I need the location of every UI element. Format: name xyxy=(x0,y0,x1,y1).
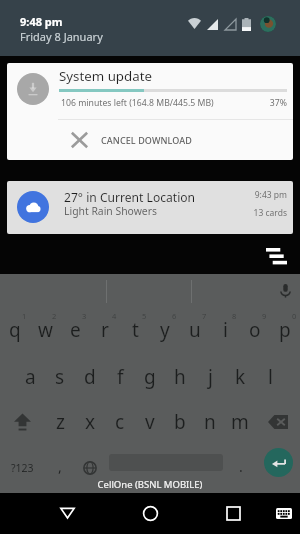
staticText: e xyxy=(70,317,81,343)
staticText: h xyxy=(174,364,186,390)
staticText: i xyxy=(223,317,228,343)
button[interactable]: j xyxy=(195,354,225,400)
staticText: ?123 xyxy=(11,461,34,475)
button[interactable]: CANCEL DOWNLOAD xyxy=(7,120,293,160)
staticText: q xyxy=(9,317,21,343)
button[interactable]: a xyxy=(15,354,45,400)
staticText: 8 xyxy=(232,311,237,321)
staticText: x xyxy=(85,409,96,435)
button[interactable]: r xyxy=(90,308,120,354)
staticText: j xyxy=(208,364,213,390)
button[interactable]: y xyxy=(150,308,180,354)
button[interactable]: e xyxy=(60,308,90,354)
staticText: 0 xyxy=(292,311,297,321)
button[interactable]: c xyxy=(105,399,135,445)
staticText: 106 minutes left (164.8 MB/445.5 MB) xyxy=(61,97,214,109)
staticText: 9 xyxy=(262,311,267,321)
staticText: g xyxy=(144,364,156,390)
button[interactable]: b xyxy=(165,399,195,445)
staticText: 2 xyxy=(52,311,57,321)
staticText: 5 xyxy=(142,311,147,321)
button[interactable]: v xyxy=(135,399,165,445)
staticText: 4 xyxy=(112,311,117,321)
button[interactable]: w xyxy=(30,308,60,354)
staticText: 27° in Current Location xyxy=(64,189,196,205)
button[interactable]: l xyxy=(255,354,285,400)
button[interactable]: Back xyxy=(53,499,81,527)
button[interactable]: ?123 xyxy=(0,445,45,491)
staticText: 7 xyxy=(202,311,207,321)
staticText: v xyxy=(145,409,155,435)
staticText: c xyxy=(115,409,125,435)
staticText: y xyxy=(160,317,170,343)
button[interactable]: i xyxy=(210,308,240,354)
staticText: 37% xyxy=(207,97,287,109)
staticText: 9:43 pm xyxy=(203,189,287,201)
staticText: b xyxy=(174,409,186,435)
button[interactable]: h xyxy=(165,354,195,400)
staticText: s xyxy=(55,364,65,390)
button[interactable]: Home xyxy=(136,499,164,527)
staticText: d xyxy=(84,364,96,390)
staticText: 9:48 pm xyxy=(20,14,63,29)
button[interactable]: p xyxy=(270,308,300,354)
staticText: r xyxy=(101,317,109,343)
button[interactable]: z xyxy=(45,399,75,445)
staticText: CANCEL DOWNLOAD xyxy=(101,134,192,146)
button[interactable]: Enter xyxy=(264,448,293,477)
button[interactable]: s xyxy=(45,354,75,400)
button[interactable]: System update xyxy=(7,63,293,160)
staticText: 1 xyxy=(22,311,27,321)
staticText: , xyxy=(58,457,62,476)
button[interactable]: Switch keyboard xyxy=(272,501,296,525)
staticText: CellOne (BSNL MOBILE) xyxy=(0,478,300,491)
button[interactable]: d xyxy=(75,354,105,400)
button[interactable]: Profile xyxy=(260,16,276,32)
staticText: o xyxy=(249,317,261,343)
staticText: w xyxy=(38,317,53,343)
staticText: 13 cards xyxy=(203,207,287,219)
staticText: l xyxy=(268,364,273,390)
button[interactable]: m xyxy=(225,399,255,445)
staticText: Light Rain Showers xyxy=(64,204,157,218)
button[interactable]: n xyxy=(195,399,225,445)
staticText: m xyxy=(231,409,249,435)
button[interactable]: f xyxy=(105,354,135,400)
button[interactable]: k xyxy=(225,354,255,400)
staticText: z xyxy=(56,409,65,435)
button[interactable]: u xyxy=(180,308,210,354)
button[interactable]: o xyxy=(240,308,270,354)
staticText: t xyxy=(132,317,139,343)
button[interactable]: Voice input xyxy=(274,279,297,302)
staticText: 3 xyxy=(82,311,87,321)
button[interactable]: t xyxy=(120,308,150,354)
staticText: n xyxy=(204,409,216,435)
staticText: 6 xyxy=(172,311,177,321)
staticText: f xyxy=(117,364,124,390)
staticText: k xyxy=(235,364,246,390)
button[interactable]: Shift xyxy=(0,399,45,445)
button[interactable]: g xyxy=(135,354,165,400)
staticText: u xyxy=(189,317,201,343)
button[interactable]: x xyxy=(75,399,105,445)
button[interactable]: Notification settings xyxy=(260,240,293,273)
button[interactable]: Recents xyxy=(219,499,247,527)
staticText: a xyxy=(25,364,36,390)
button[interactable]: Change keyboard language xyxy=(75,445,105,491)
staticText: . xyxy=(239,457,243,476)
staticText: Friday 8 January xyxy=(20,29,103,44)
button[interactable]: 27° in Current Location xyxy=(7,181,293,234)
staticText: System update xyxy=(59,67,152,85)
staticText: p xyxy=(279,317,291,343)
button[interactable]: q xyxy=(0,308,30,354)
button[interactable]: Backspace xyxy=(255,399,300,445)
